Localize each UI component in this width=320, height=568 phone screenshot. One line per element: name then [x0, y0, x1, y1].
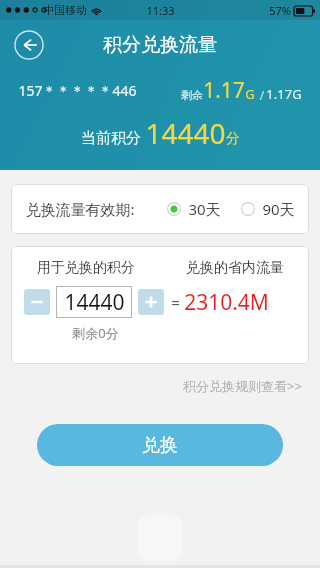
- button[interactable]: Back: [14, 30, 44, 60]
- staticText: 57%: [269, 3, 291, 18]
- staticText: 中国移动: [43, 3, 87, 17]
- staticText: /: [255, 87, 266, 103]
- button[interactable]: 90天: [239, 195, 297, 223]
- staticText: 1.17G: [266, 85, 302, 103]
- staticText: G: [245, 85, 255, 103]
- staticText: 分: [226, 130, 240, 148]
- staticText: 157＊＊＊＊＊446: [18, 81, 137, 100]
- staticText: 用于兑换的积分: [37, 259, 135, 277]
- staticText: 兑换流量有效期:: [25, 199, 135, 219]
- staticText: 30天: [188, 199, 221, 219]
- staticText: 90天: [262, 199, 295, 219]
- button[interactable]: 兑换: [37, 424, 283, 466]
- staticText: =: [171, 292, 180, 312]
- staticText: 1.17: [203, 76, 245, 105]
- staticText: 兑换: [142, 434, 178, 457]
- staticText: 兑换的省内流量: [186, 259, 284, 277]
- staticText: 11:33: [146, 3, 175, 18]
- button[interactable]: Decrease: [24, 289, 50, 315]
- staticText: 积分兑换流量: [103, 33, 217, 57]
- staticText: 积分兑换规则查看>>: [183, 377, 302, 395]
- staticText: 2310.4M: [184, 288, 269, 317]
- staticText: 剩余: [181, 88, 203, 102]
- staticText: 当前积分: [81, 129, 141, 148]
- button[interactable]: 积分兑换规则查看>>: [179, 374, 306, 398]
- staticText: 14440: [145, 114, 226, 152]
- staticText: 剩余0分: [72, 324, 119, 342]
- button[interactable]: Increase: [138, 289, 164, 315]
- button[interactable]: 30天: [165, 195, 223, 223]
- staticText: 14440: [64, 288, 125, 317]
